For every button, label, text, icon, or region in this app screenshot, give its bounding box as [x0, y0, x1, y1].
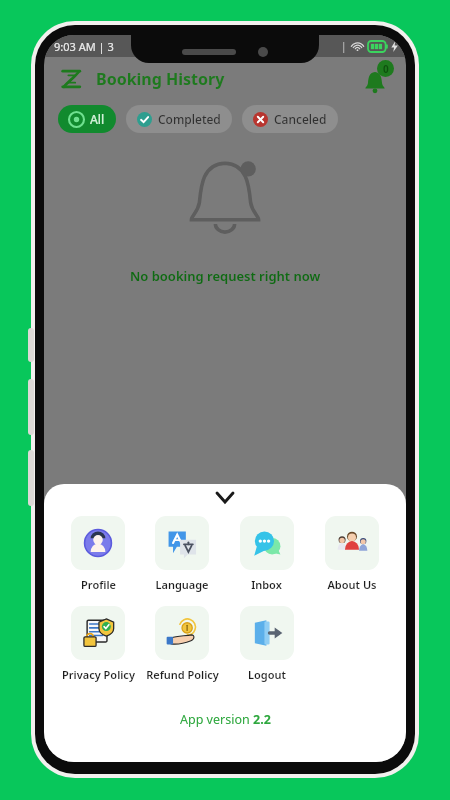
button[interactable]: Profile	[56, 516, 140, 592]
staticText: App version	[180, 711, 253, 728]
button[interactable]: All	[58, 105, 116, 133]
staticText: Completed	[158, 111, 221, 127]
staticText: All	[90, 111, 105, 127]
staticText: Inbox	[251, 577, 282, 592]
staticText: 9:03 AM | 3	[54, 39, 114, 54]
button[interactable]: Completed	[126, 105, 232, 133]
staticText: Canceled	[274, 111, 327, 127]
staticText: Refund Policy	[146, 667, 219, 682]
button[interactable]: Refund Policy	[140, 606, 224, 682]
button[interactable]: Privacy Policy	[56, 606, 140, 682]
staticText: Privacy Policy	[62, 667, 135, 682]
staticText: |	[341, 39, 347, 53]
staticText: No booking request right now	[130, 267, 321, 285]
staticText: Language	[155, 577, 209, 592]
staticText: Logout	[248, 667, 286, 682]
staticText: 0	[383, 62, 389, 76]
button[interactable]: Notifications	[358, 62, 392, 96]
button[interactable]: Close sheet	[44, 484, 406, 510]
button[interactable]: Inbox	[224, 516, 309, 592]
staticText: Booking History	[96, 68, 225, 90]
button[interactable]: Canceled	[242, 105, 338, 133]
button[interactable]: Language	[140, 516, 224, 592]
button[interactable]: About Us	[309, 516, 394, 592]
staticText: Profile	[81, 577, 116, 592]
staticText: 2.2	[253, 711, 271, 728]
button[interactable]: Logout	[224, 606, 309, 682]
staticText: About Us	[327, 577, 377, 592]
